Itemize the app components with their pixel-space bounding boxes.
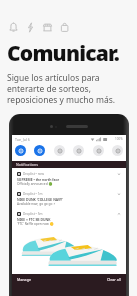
staticText: 100% <box>115 137 123 141</box>
button[interactable]: Wi-Fi <box>15 145 26 156</box>
staticText: Tue, Jul 6 <box>15 137 30 142</box>
staticText: Droplist • 5m <box>23 212 43 216</box>
button[interactable]: Store <box>41 21 54 34</box>
button[interactable]: Notifications <box>7 21 20 34</box>
staticText: Droplist • now <box>23 172 44 176</box>
button[interactable]: Auto-rotate <box>93 145 104 156</box>
staticText: SUPREME • the north face <box>17 177 60 182</box>
staticText: Manage <box>17 277 31 282</box>
button[interactable]: Bag <box>58 21 71 34</box>
staticText: NIKE × FTC SB DUNK <box>17 217 51 222</box>
button[interactable]: Droplist • 1m <box>14 190 124 208</box>
staticText: Officially announced 🟢 <box>17 182 53 186</box>
button[interactable]: Flashlight <box>73 145 84 156</box>
staticText: Notifications <box>16 162 38 167</box>
button[interactable]: Droplist • now <box>14 170 124 188</box>
staticText: Sigue los artículos para enterarte de so… <box>7 72 130 105</box>
staticText: Clear all <box>107 277 121 282</box>
button[interactable]: Drops <box>24 21 37 34</box>
button[interactable]: Clear all <box>106 276 122 283</box>
staticText: Comunicar. <box>7 39 119 68</box>
staticText: 'FTC' Raffle open now 🟡 <box>17 222 54 226</box>
button[interactable]: Do not disturb <box>54 145 65 156</box>
staticText: Available now, go go go ⚡ <box>17 202 56 206</box>
button[interactable]: Manage <box>16 276 32 283</box>
staticText: Droplist • 1m <box>23 192 43 196</box>
staticText: NIKE DUNK 'COLLEGE NAVY' <box>17 197 63 202</box>
button[interactable]: Bluetooth <box>34 145 45 156</box>
button[interactable]: Battery saver <box>112 145 123 156</box>
button[interactable]: Droplist • 5m <box>14 210 124 272</box>
